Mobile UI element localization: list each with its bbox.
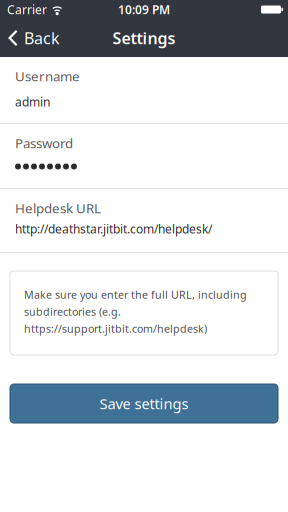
staticText: Save settings <box>99 394 188 413</box>
staticText: Carrier <box>7 1 47 17</box>
button[interactable]: Back <box>0 22 70 54</box>
staticText: Make sure you enter the full URL, includ… <box>24 287 247 302</box>
staticText: http://deathstar.jitbit.com/helpdesk/ <box>15 221 212 237</box>
staticText: Back <box>24 27 60 49</box>
staticText: subdirectories (e.g. <box>24 304 121 319</box>
staticText: https://support.jitbit.com/helpdesk) <box>24 321 207 336</box>
staticText: Settings <box>112 27 175 49</box>
staticText: Password <box>15 134 73 152</box>
staticText: Username <box>15 67 80 85</box>
staticText: admin <box>15 94 50 110</box>
staticText: 10:09 PM <box>118 1 170 17</box>
button[interactable]: Save settings <box>10 384 278 423</box>
staticText: Helpdesk URL <box>15 199 101 217</box>
